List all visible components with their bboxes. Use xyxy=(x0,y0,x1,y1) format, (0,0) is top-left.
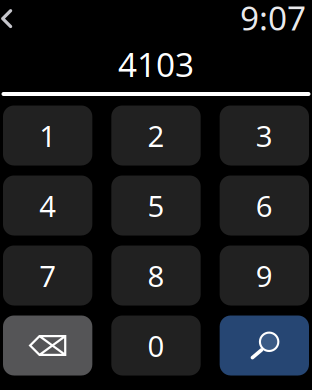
staticText: 0 xyxy=(147,326,164,365)
button[interactable]: 0 xyxy=(111,315,201,375)
button[interactable]: 6 xyxy=(220,175,309,235)
button[interactable]: 1 xyxy=(3,105,92,165)
staticText: 6 xyxy=(256,186,273,225)
staticText: 9 xyxy=(256,256,273,295)
staticText: 5 xyxy=(147,186,164,225)
button[interactable]: Search xyxy=(220,315,309,375)
staticText: 4103 xyxy=(118,42,194,86)
button[interactable]: 9 xyxy=(220,245,309,305)
staticText: 8 xyxy=(147,256,164,295)
button[interactable]: Back xyxy=(0,0,20,42)
button[interactable]: 3 xyxy=(220,105,309,165)
staticText: 2 xyxy=(147,116,164,155)
staticText: 1 xyxy=(39,116,56,155)
button[interactable]: 4 xyxy=(3,175,92,235)
button[interactable]: Delete xyxy=(3,315,92,375)
staticText: 3 xyxy=(256,116,273,155)
button[interactable]: 5 xyxy=(111,175,201,235)
staticText: 4 xyxy=(39,186,56,225)
button[interactable]: 2 xyxy=(111,105,201,165)
staticText: 7 xyxy=(39,256,56,295)
staticText: 9:07 xyxy=(240,0,306,40)
button[interactable]: 7 xyxy=(3,245,92,305)
button[interactable]: 8 xyxy=(111,245,201,305)
